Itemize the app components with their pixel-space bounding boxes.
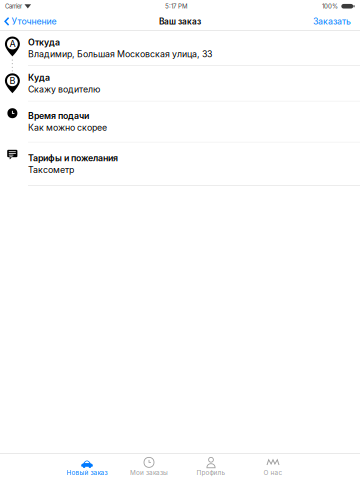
button[interactable]: Откуда bbox=[0, 31, 360, 66]
staticText: О нас bbox=[263, 469, 282, 477]
staticText: Владимир, Большая Московская улица, 33 bbox=[28, 49, 212, 59]
staticText: 100% bbox=[322, 2, 338, 10]
button[interactable]: О нас bbox=[242, 455, 304, 479]
button[interactable]: Профиль bbox=[180, 455, 242, 479]
staticText: 5:17 PM bbox=[165, 2, 188, 10]
staticText: Откуда bbox=[28, 37, 60, 47]
staticText: Скажу водителю bbox=[28, 84, 100, 95]
staticText: B bbox=[9, 75, 15, 86]
button[interactable]: Заказать bbox=[307, 12, 360, 30]
button[interactable]: Уточнение bbox=[0, 12, 62, 30]
staticText: A bbox=[9, 38, 15, 49]
button[interactable]: Мои заказы bbox=[118, 455, 180, 479]
button[interactable]: Новый заказ bbox=[56, 455, 118, 479]
staticText: Куда bbox=[28, 72, 50, 83]
staticText: Заказать bbox=[313, 16, 351, 27]
staticText: Ваш заказ bbox=[159, 16, 201, 26]
staticText: Тарифы и пожелания bbox=[28, 153, 118, 163]
staticText: Уточнение bbox=[11, 16, 56, 27]
button[interactable]: Куда bbox=[0, 66, 360, 101]
staticText: Мои заказы bbox=[130, 469, 168, 477]
staticText: Carrier bbox=[5, 3, 22, 10]
staticText: Как можно скорее bbox=[28, 122, 107, 133]
staticText: Время подачи bbox=[28, 110, 89, 121]
button[interactable]: Тарифы и пожелания bbox=[0, 142, 360, 186]
button[interactable]: Время подачи bbox=[0, 101, 360, 142]
staticText: Таксометр bbox=[28, 165, 74, 175]
staticText: Профиль bbox=[196, 469, 225, 477]
staticText: Новый заказ bbox=[66, 469, 107, 477]
